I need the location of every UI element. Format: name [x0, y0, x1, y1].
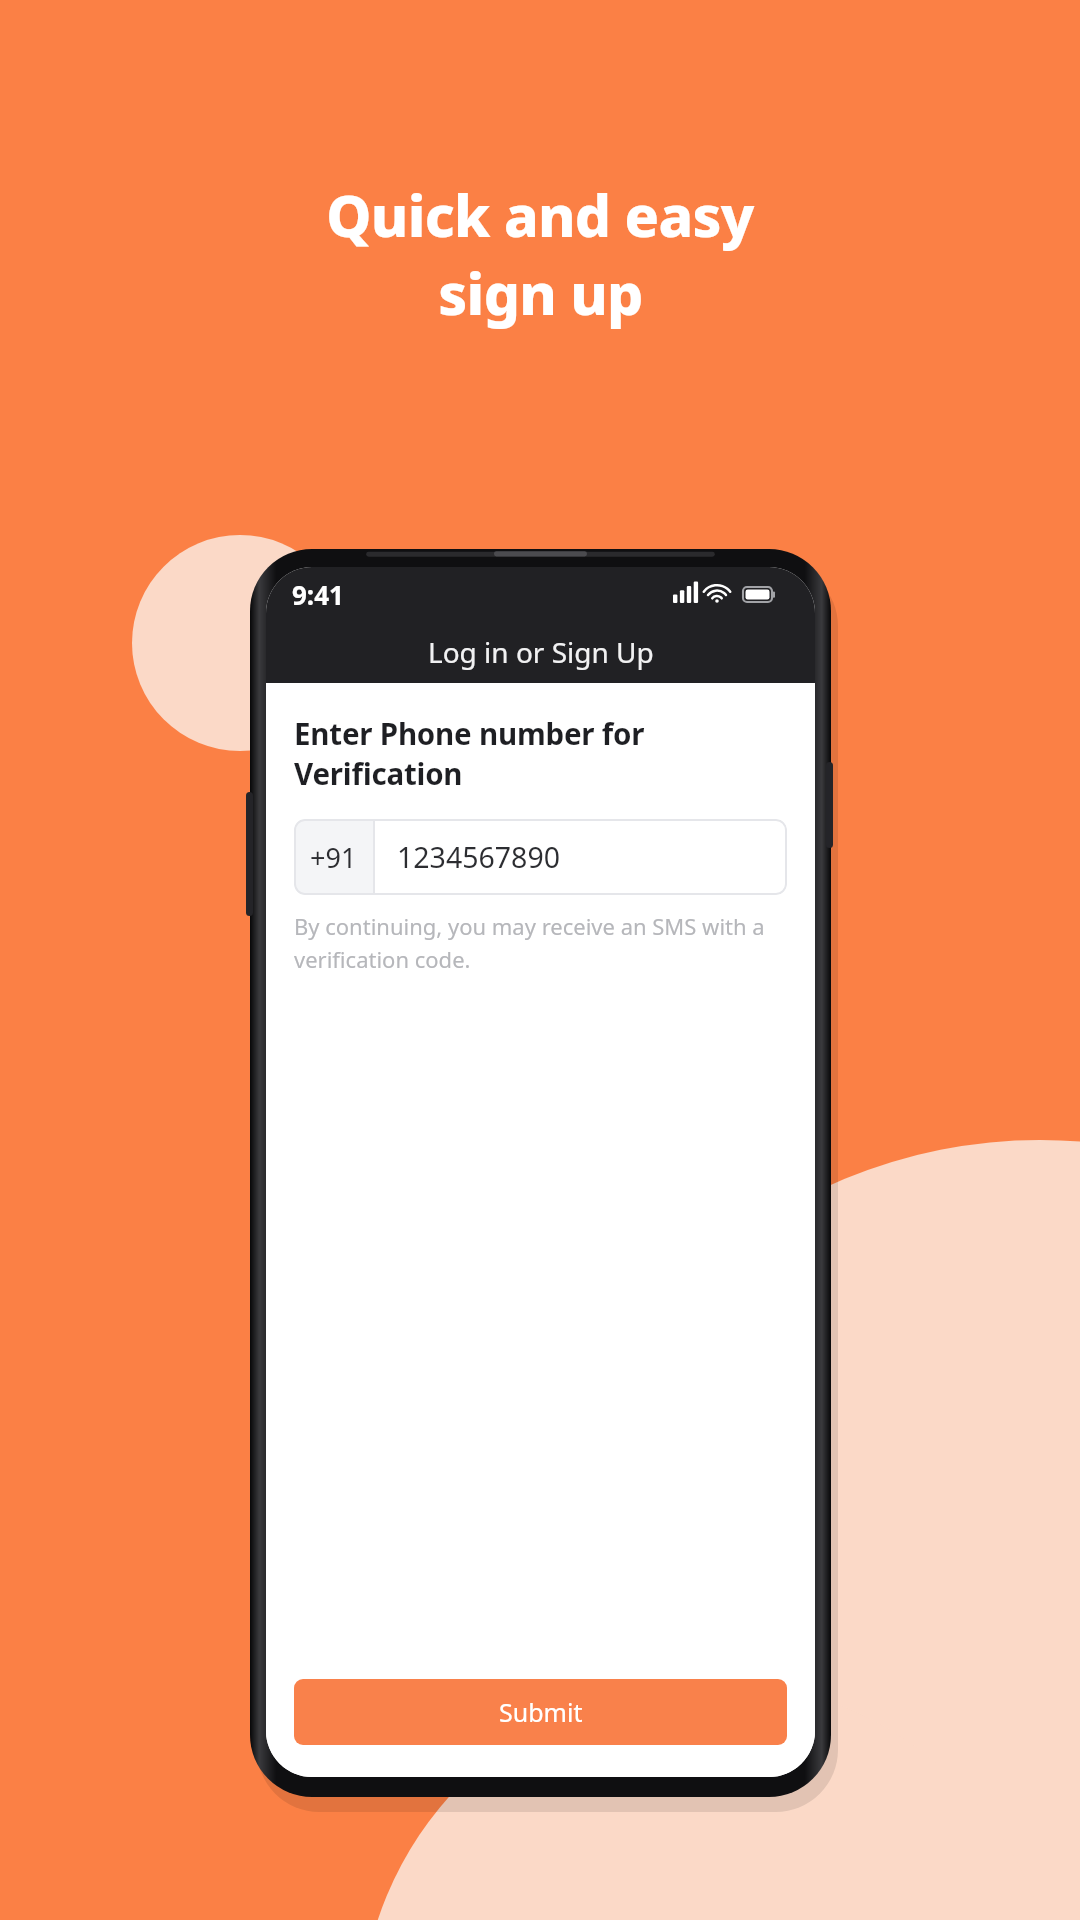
staticText: 9:41	[292, 577, 344, 612]
staticText: Submit	[499, 1695, 583, 1729]
staticText: By continuing, you may receive an SMS wi…	[294, 911, 787, 974]
staticText: Quick and easy	[326, 176, 754, 254]
staticText: Enter Phone number for Verification	[294, 713, 787, 793]
staticText: +91	[310, 839, 357, 876]
staticText: Log in or Sign Up	[428, 633, 654, 671]
button[interactable]: Log in or Sign Up	[266, 621, 815, 683]
staticText: 1234567890	[397, 838, 561, 877]
staticText: sign up	[438, 254, 643, 332]
button[interactable]: +91	[294, 819, 787, 895]
button[interactable]: Submit	[294, 1679, 787, 1745]
